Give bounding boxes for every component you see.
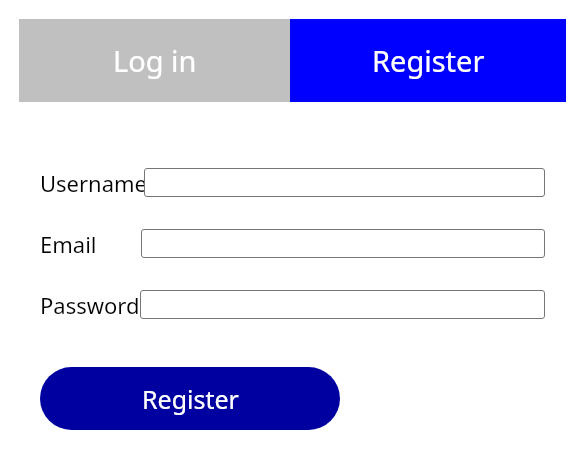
button[interactable]: Register: [290, 19, 566, 102]
button[interactable]: [144, 168, 545, 197]
staticText: Password: [40, 290, 140, 320]
staticText: Email: [40, 229, 97, 259]
button[interactable]: Log in: [19, 19, 290, 102]
button[interactable]: [140, 290, 545, 319]
staticText: Register: [142, 382, 239, 416]
button[interactable]: [141, 229, 545, 258]
staticText: Username: [40, 168, 148, 198]
staticText: Log in: [113, 41, 197, 80]
button[interactable]: Register: [40, 367, 340, 430]
staticText: Register: [372, 41, 485, 80]
